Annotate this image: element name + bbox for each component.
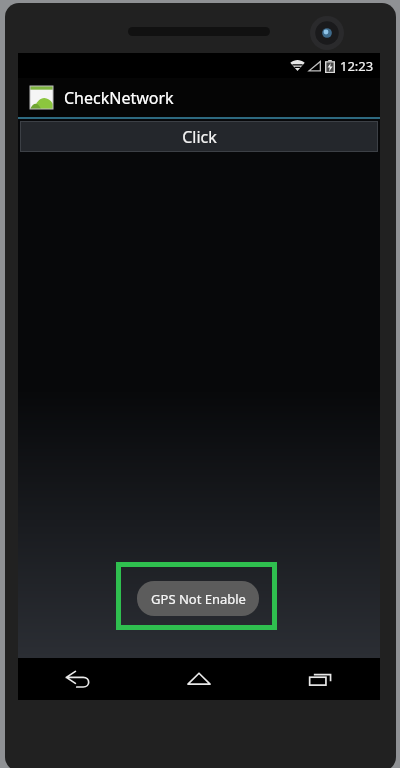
- button[interactable]: Recent apps: [259, 658, 380, 700]
- staticText: 12:23: [340, 57, 374, 75]
- button[interactable]: Click: [20, 121, 378, 152]
- button[interactable]: Back: [18, 658, 138, 700]
- button[interactable]: Home: [138, 658, 259, 700]
- staticText: Click: [182, 126, 217, 148]
- staticText: CheckNetwork: [64, 87, 174, 109]
- staticText: GPS Not Enable: [151, 590, 246, 608]
